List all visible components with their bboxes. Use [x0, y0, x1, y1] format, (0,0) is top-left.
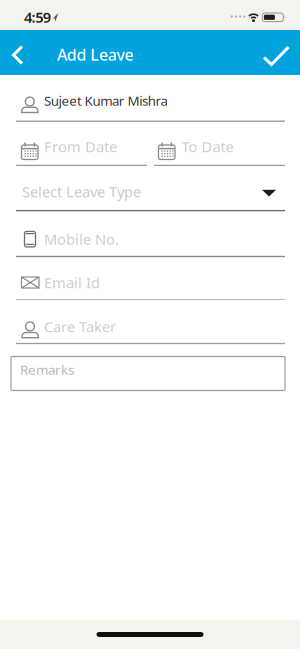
- button[interactable]: From Date: [16, 130, 147, 168]
- staticText: Sujeet Kumar Mishra: [44, 92, 167, 109]
- button[interactable]: Save: [255, 30, 300, 75]
- staticText: Add Leave: [57, 44, 133, 65]
- staticText: Mobile No.: [44, 229, 119, 249]
- button[interactable]: Back: [0, 30, 38, 75]
- staticText: Select Leave Type: [22, 182, 141, 201]
- button[interactable]: Mobile No.: [16, 221, 285, 258]
- staticText: Email Id: [44, 273, 100, 292]
- button[interactable]: To Date: [154, 130, 285, 168]
- staticText: Remarks: [20, 361, 74, 378]
- button[interactable]: Care Taker: [16, 308, 285, 345]
- staticText: Care Taker: [44, 317, 116, 336]
- staticText: To Date: [181, 137, 233, 156]
- staticText: 4:59: [24, 7, 51, 27]
- button[interactable]: Select Leave Type: [16, 175, 285, 212]
- staticText: From Date: [44, 137, 117, 156]
- button[interactable]: Email Id: [16, 264, 285, 301]
- button[interactable]: Sujeet Kumar Mishra: [0, 80, 300, 123]
- button[interactable]: Remarks: [11, 356, 285, 390]
